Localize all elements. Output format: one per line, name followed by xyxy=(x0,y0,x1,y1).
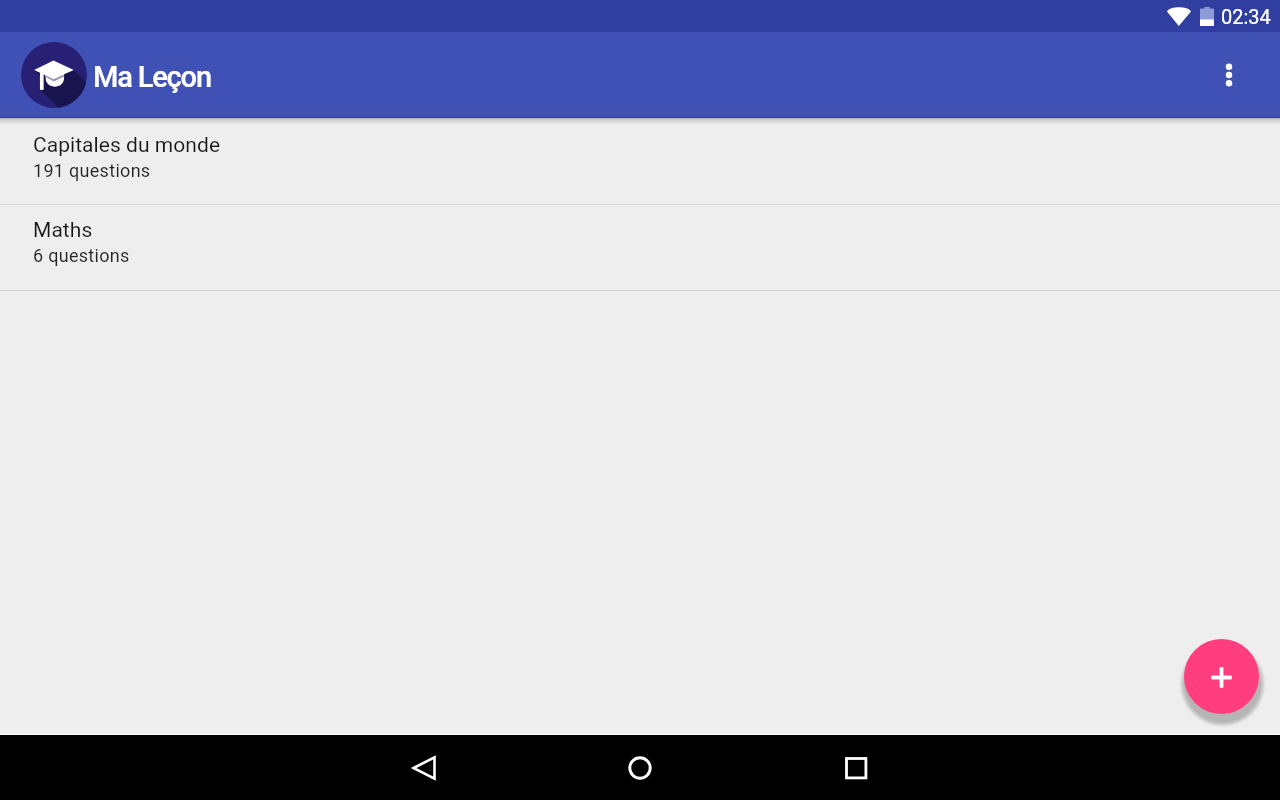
button[interactable]: Recent apps xyxy=(824,735,888,800)
staticText: Capitales du monde xyxy=(33,133,221,158)
staticText: 191 questions xyxy=(33,160,151,181)
button[interactable]: Capitales du monde xyxy=(0,118,1280,204)
button[interactable]: Maths xyxy=(0,205,1280,290)
button[interactable]: More options xyxy=(1197,43,1261,107)
staticText: Ma Leçon xyxy=(93,60,211,94)
button[interactable]: Home xyxy=(608,735,672,800)
staticText: Maths xyxy=(33,218,93,243)
button[interactable]: Back xyxy=(392,735,456,800)
staticText: 6 questions xyxy=(33,245,130,266)
staticText: 02:34 xyxy=(1221,5,1271,28)
button[interactable]: Add xyxy=(1184,639,1259,714)
